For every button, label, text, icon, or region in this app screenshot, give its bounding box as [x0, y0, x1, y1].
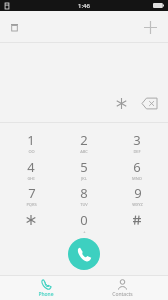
button[interactable]: Call: [68, 238, 100, 270]
staticText: TUV: [80, 202, 88, 207]
staticText: +: [83, 229, 86, 234]
staticText: Phone: [38, 291, 54, 298]
staticText: 1: [27, 131, 35, 149]
button[interactable]: Phone: [23, 277, 69, 300]
button[interactable]: Backspace: [136, 90, 162, 116]
button[interactable]: Menu: [5, 18, 23, 36]
staticText: DEF: [133, 149, 141, 154]
staticText: 7: [28, 184, 36, 202]
staticText: ABC: [80, 149, 88, 154]
button[interactable]: Add contact: [138, 15, 162, 39]
staticText: MNO: [132, 176, 142, 181]
staticText: WXYZ: [132, 202, 143, 207]
staticText: 9: [134, 184, 142, 202]
staticText: PQRS: [26, 202, 37, 207]
staticText: 8: [80, 184, 88, 202]
button[interactable]: [115, 209, 159, 235]
button[interactable]: 5: [62, 156, 106, 182]
button[interactable]: 6: [115, 156, 159, 182]
button[interactable]: 8: [62, 182, 106, 208]
staticText: 6: [133, 158, 141, 176]
staticText: 0: [80, 211, 88, 229]
staticText: 1:46: [78, 2, 90, 10]
staticText: 3: [133, 131, 141, 149]
button[interactable]: Star: [110, 92, 132, 114]
staticText: GHI: [27, 176, 35, 181]
staticText: OO: [28, 149, 35, 154]
button[interactable]: 3: [115, 129, 159, 155]
staticText: 4: [27, 158, 35, 176]
staticText: 5: [80, 158, 88, 176]
staticText: Contacts: [112, 291, 133, 298]
button[interactable]: 7: [9, 182, 53, 208]
button[interactable]: 2: [62, 129, 106, 155]
staticText: 2: [80, 131, 88, 149]
button[interactable]: 1: [9, 129, 53, 155]
button[interactable]: 9: [115, 182, 159, 208]
button[interactable]: Contacts: [99, 277, 145, 300]
button[interactable]: 0: [62, 209, 106, 235]
staticText: JKL: [81, 176, 87, 181]
button[interactable]: 4: [9, 156, 53, 182]
button[interactable]: [9, 209, 53, 235]
